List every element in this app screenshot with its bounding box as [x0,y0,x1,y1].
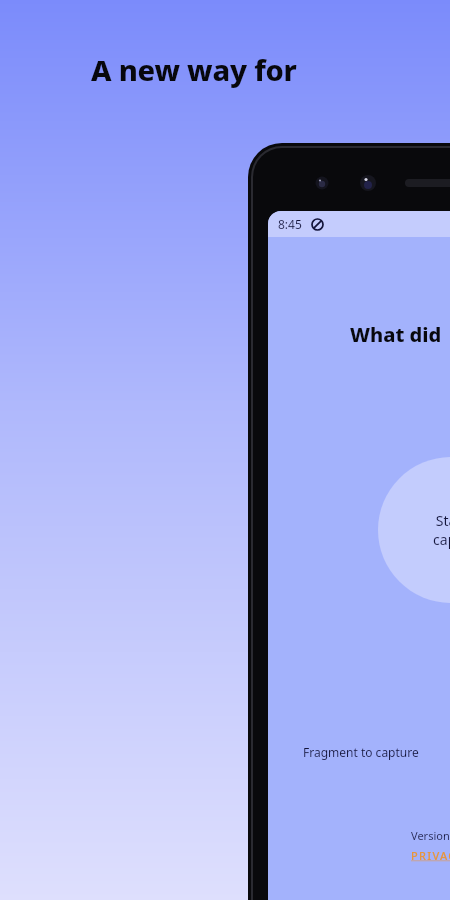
staticText: Version [411,828,450,843]
staticText: PRIVACY [411,848,450,863]
staticText: What did [350,321,442,348]
staticText: Start captu [433,511,450,549]
button[interactable]: Start captu [378,457,450,603]
staticText: A new way for [91,50,297,89]
button[interactable]: PRIVACY [411,848,450,863]
staticText: 8:45 [278,216,302,232]
staticText: Fragment to capture [303,744,419,760]
